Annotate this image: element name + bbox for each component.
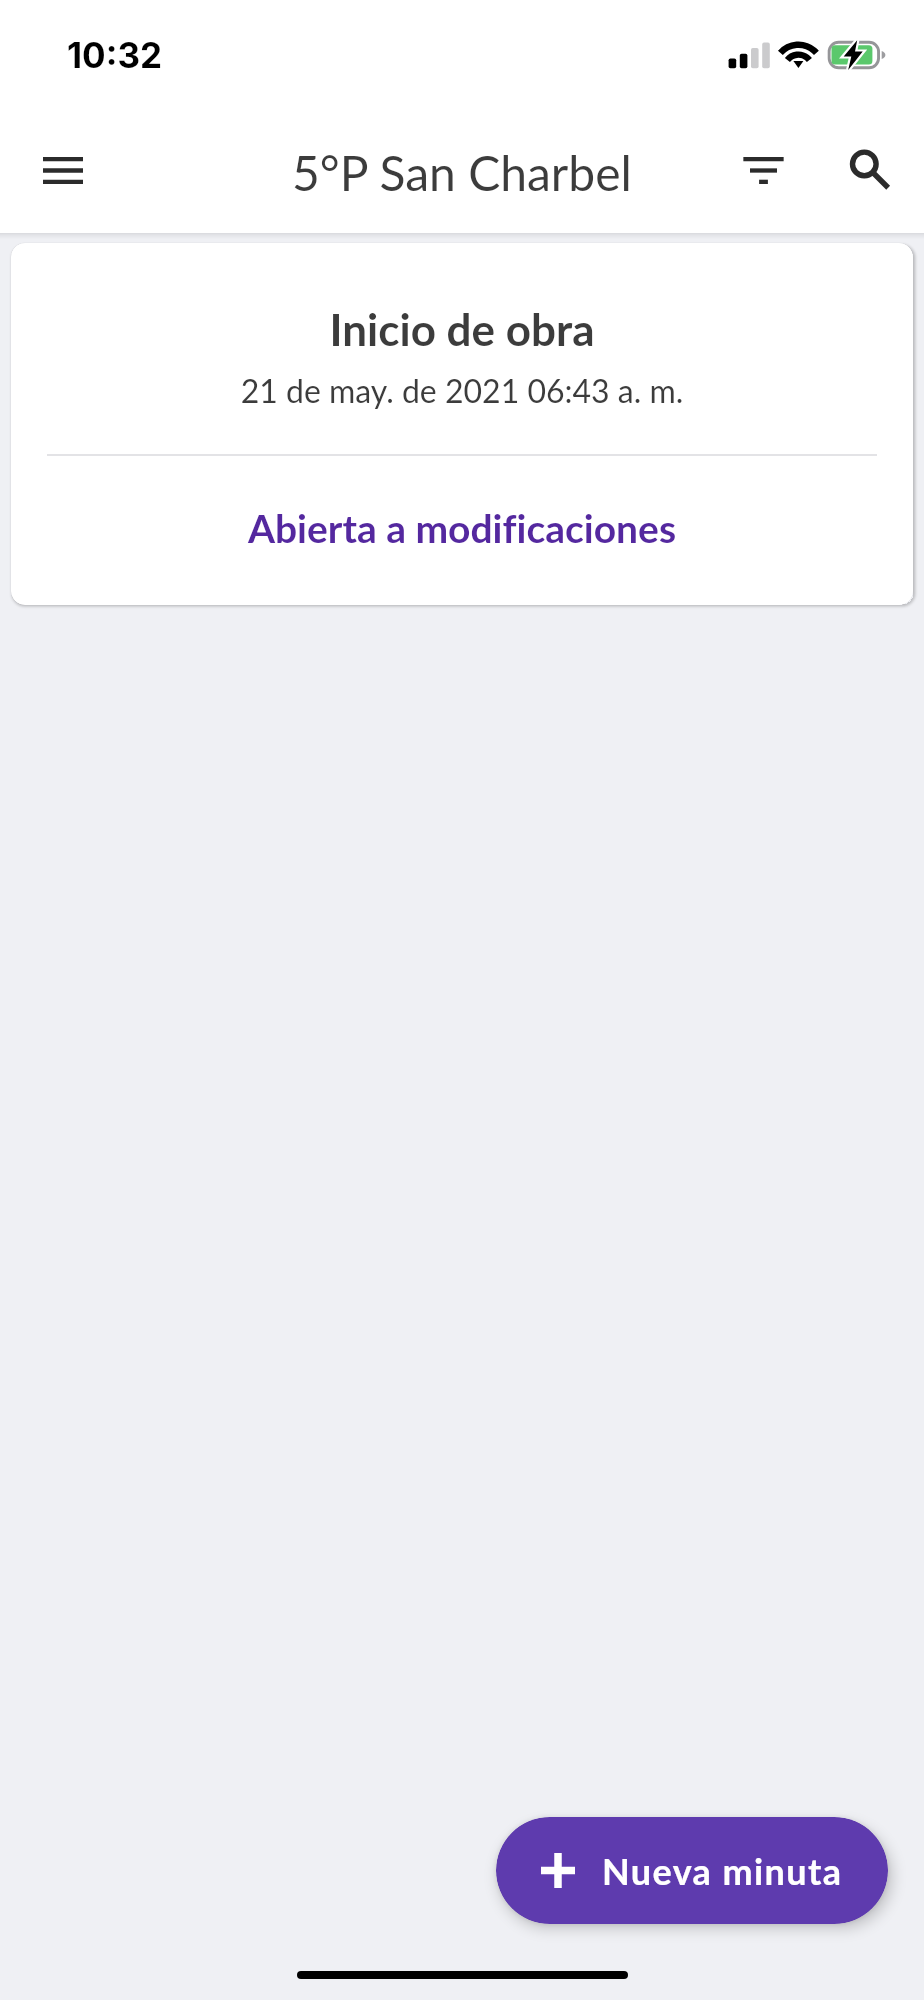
button[interactable]: Nueva minuta (496, 1817, 888, 1924)
staticText: 10:32 (67, 34, 163, 76)
staticText: 5°P San Charbel (292, 144, 632, 202)
button[interactable]: Menu (20, 127, 106, 213)
staticText: Inicio de obra (11, 303, 913, 356)
staticText: Nueva minuta (602, 1849, 843, 1892)
button[interactable]: Search (822, 122, 908, 208)
button[interactable]: Filter (720, 127, 806, 213)
staticText: Abierta a modificaciones (11, 505, 913, 552)
staticText: 21 de may. de 2021 06:43 a. m. (11, 371, 913, 409)
button[interactable]: Inicio de obra (11, 243, 913, 605)
